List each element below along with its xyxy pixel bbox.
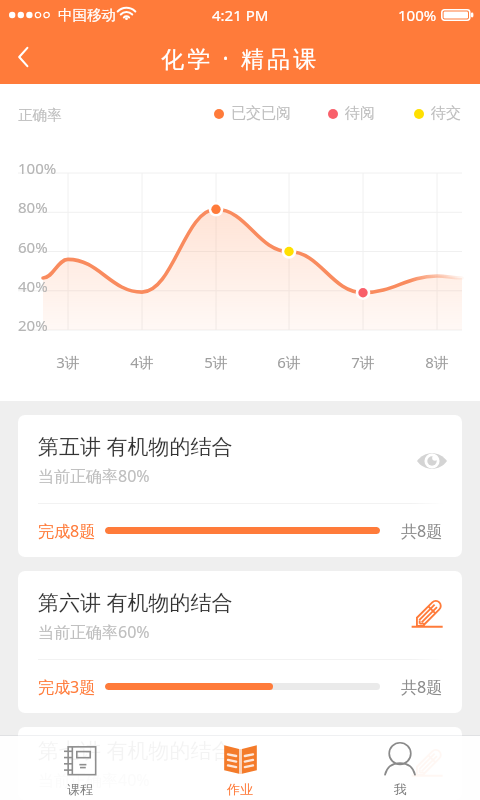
button[interactable]: Preview <box>405 437 449 481</box>
staticText: 100% <box>398 5 437 25</box>
staticText: 20% <box>18 315 48 335</box>
staticText: 80% <box>18 197 48 217</box>
button[interactable]: 第七讲 有机物的结合 <box>18 727 462 800</box>
staticText: 共8题 <box>401 520 443 542</box>
staticText: 我 <box>394 781 407 797</box>
button[interactable]: 课程 <box>0 736 160 800</box>
button[interactable]: 第六讲 有机物的结合 <box>18 571 462 713</box>
staticText: 6讲 <box>264 352 314 372</box>
button[interactable]: Edit <box>405 593 449 637</box>
staticText: 待阅 <box>345 104 375 123</box>
button[interactable]: Back <box>0 33 48 81</box>
staticText: 当前正确率80% <box>38 465 150 487</box>
staticText: 第六讲 有机物的结合 <box>38 588 233 617</box>
staticText: 已交已阅 <box>231 104 291 123</box>
staticText: 40% <box>18 276 48 296</box>
staticText: 3讲 <box>43 352 93 372</box>
staticText: 完成8题 <box>38 520 96 542</box>
staticText: 第七讲 有机物的结合 <box>38 736 233 765</box>
button[interactable]: 我 <box>320 736 480 800</box>
staticText: 化学 · 精品课 <box>161 42 320 73</box>
staticText: 5讲 <box>191 352 241 372</box>
staticText: 作业 <box>227 781 253 797</box>
staticText: 7讲 <box>338 352 388 372</box>
staticText: 第五讲 有机物的结合 <box>38 432 233 461</box>
staticText: 正确率 <box>18 106 62 124</box>
staticText: 完成3题 <box>38 676 96 698</box>
staticText: 4讲 <box>117 352 167 372</box>
staticText: 待交 <box>431 104 461 123</box>
staticText: 8讲 <box>412 352 462 372</box>
staticText: 4:21 PM <box>212 5 269 25</box>
staticText: 当前正确率40% <box>38 769 150 791</box>
staticText: 中国移动 <box>58 6 116 24</box>
staticText: 共8题 <box>401 676 443 698</box>
button[interactable]: 第五讲 有机物的结合 <box>18 415 462 557</box>
staticText: 课程 <box>67 781 93 797</box>
button[interactable]: 作业 <box>160 736 320 800</box>
staticText: 60% <box>18 237 48 257</box>
button[interactable]: Edit <box>405 742 449 786</box>
staticText: 100% <box>18 158 57 178</box>
staticText: 当前正确率60% <box>38 621 150 643</box>
